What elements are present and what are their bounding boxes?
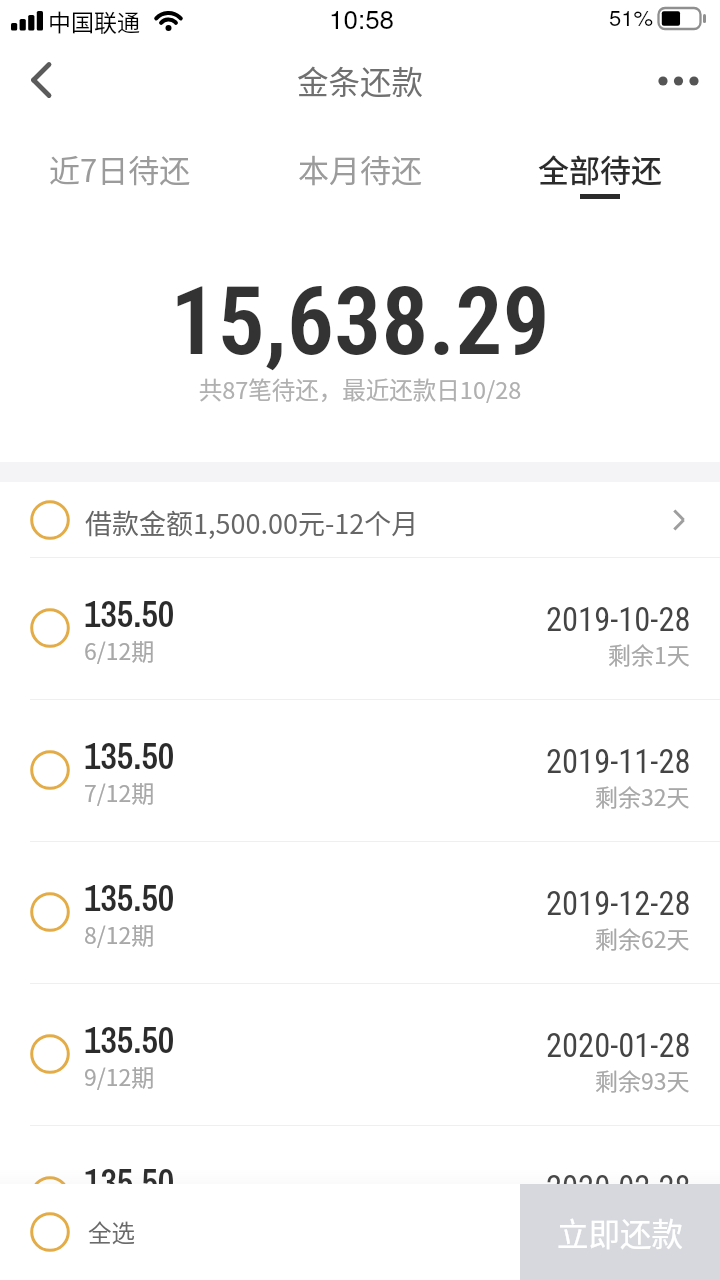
button[interactable]: 135.50: [0, 558, 720, 699]
button[interactable]: 全部待还: [480, 127, 720, 212]
button[interactable]: 135.50: [0, 842, 720, 983]
button[interactable]: Back: [0, 45, 82, 127]
button[interactable]: 借款金额1,500.00元-12个月: [0, 482, 720, 557]
staticText: 51%: [609, 1, 654, 33]
button[interactable]: 135.50: [0, 700, 720, 841]
staticText: 9/12期: [84, 1059, 155, 1092]
staticText: 全选: [88, 1215, 135, 1249]
button[interactable]: 全选: [0, 1184, 200, 1280]
staticText: 8/12期: [84, 917, 155, 950]
staticText: 中国联通: [48, 4, 140, 37]
staticText: 135.50: [84, 1158, 175, 1206]
button[interactable]: 135.50: [0, 984, 720, 1125]
staticText: 全部待还: [538, 146, 662, 191]
staticText: 7/12期: [84, 775, 155, 808]
staticText: 135.50: [84, 1016, 175, 1064]
staticText: 剩余62天: [595, 921, 690, 954]
staticText: 本月待还: [298, 146, 422, 191]
staticText: 135.50: [84, 590, 175, 638]
staticText: 2020-02-28: [546, 1169, 691, 1207]
staticText: 6/12期: [84, 633, 155, 666]
staticText: 2019-11-28: [546, 743, 691, 781]
staticText: 剩余32天: [595, 779, 690, 812]
staticText: 10/12期: [84, 1201, 168, 1234]
staticText: 2019-10-28: [546, 601, 691, 639]
staticText: 立即还款: [557, 1209, 684, 1255]
button[interactable]: 立即还款: [520, 1184, 720, 1280]
staticText: 10:58: [329, 0, 395, 36]
staticText: 剩余1天: [608, 637, 690, 670]
staticText: 近7日待还: [49, 146, 191, 191]
staticText: 2019-12-28: [546, 885, 691, 923]
staticText: 135.50: [84, 874, 175, 922]
staticText: 金条还款: [297, 57, 424, 103]
staticText: 135.50: [84, 732, 175, 780]
staticText: 共87笔待还，最近还款日10/28: [0, 372, 720, 406]
staticText: 借款金额1,500.00元-12个月: [85, 503, 419, 542]
staticText: 15,638.29: [0, 267, 720, 377]
button[interactable]: 135.50: [0, 1126, 720, 1267]
staticText: 剩余124天: [582, 1205, 690, 1238]
button[interactable]: 近7日待还: [0, 127, 240, 212]
button[interactable]: 本月待还: [240, 127, 480, 212]
staticText: 剩余93天: [595, 1063, 690, 1096]
button[interactable]: More options: [638, 45, 720, 127]
staticText: 2020-01-28: [546, 1027, 691, 1065]
